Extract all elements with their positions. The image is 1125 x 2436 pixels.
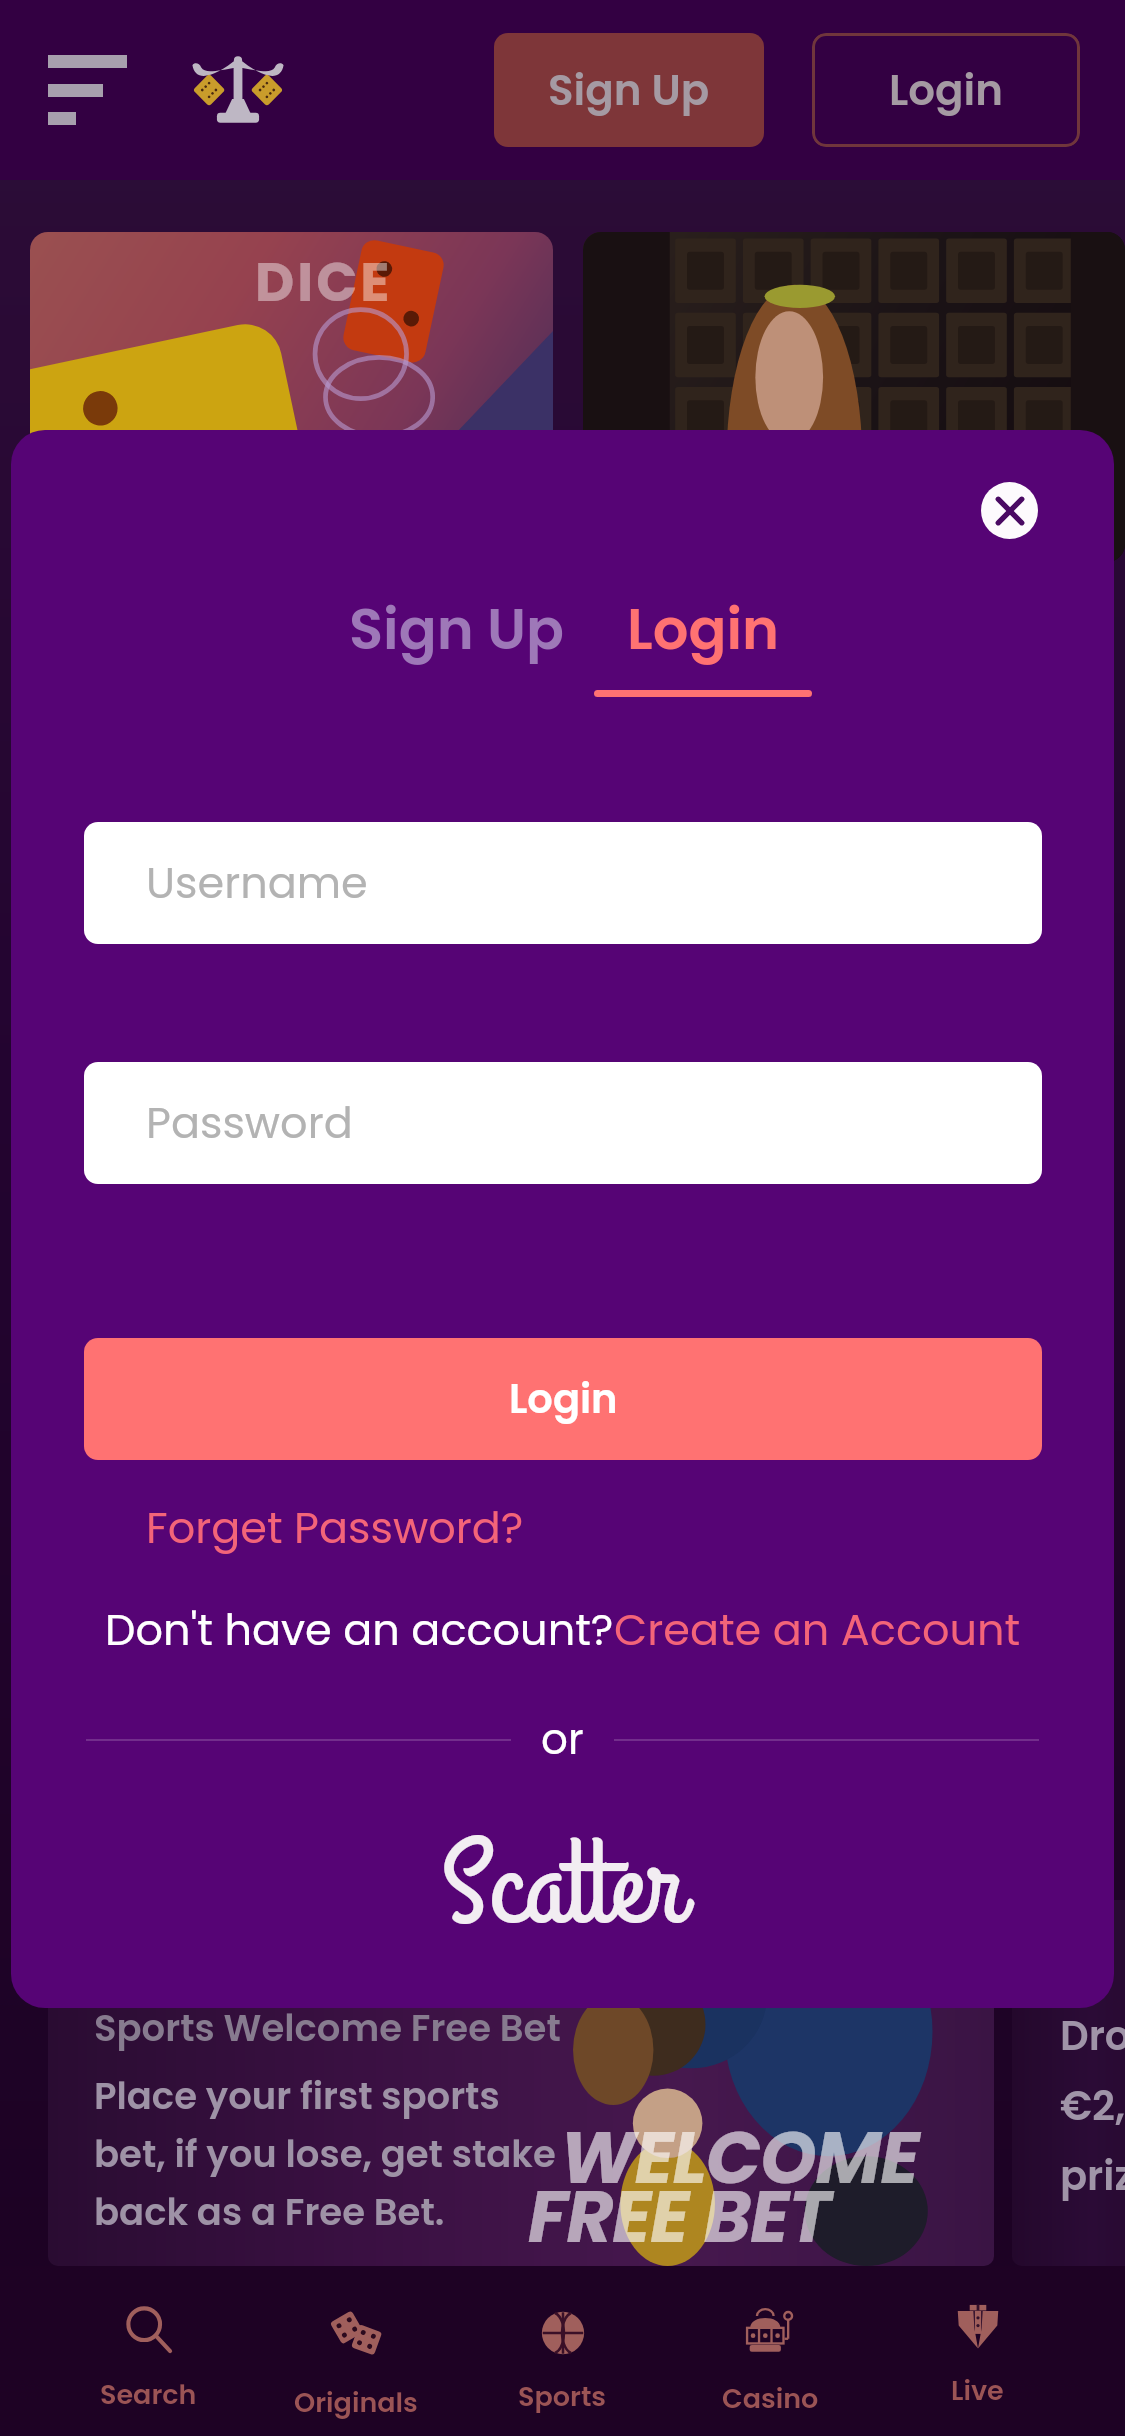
staticText: Login — [889, 61, 1003, 120]
button[interactable]: Close — [981, 482, 1038, 539]
staticText: Drop — [1060, 2008, 1125, 2064]
button[interactable]: Create an Account — [614, 1600, 1021, 1660]
button[interactable]: Username — [84, 822, 1042, 944]
staticText: prize — [1060, 2148, 1125, 2204]
button[interactable]: WELCOME — [48, 1900, 994, 2266]
staticText: Forget Password? — [146, 1498, 524, 1558]
staticText: Login — [627, 590, 779, 668]
staticText: Sports Welcome Free Bet — [94, 2002, 561, 2054]
button[interactable]: Home — [188, 40, 288, 140]
button[interactable]: Sports — [452, 2296, 672, 2424]
staticText: Username — [146, 853, 368, 913]
staticText: Login — [509, 1371, 618, 1427]
staticText: Live — [951, 2372, 1004, 2410]
button[interactable]: Drop — [1012, 1900, 1125, 2266]
staticText: or — [541, 1710, 584, 1769]
staticText: WELCOME — [560, 2107, 919, 2208]
staticText: Search — [100, 2376, 197, 2414]
button[interactable]: Login — [594, 580, 812, 697]
button[interactable]: Originals — [246, 2294, 466, 2422]
button[interactable]: Forget Password? — [134, 1488, 536, 1568]
staticText: Place your first sports bet, if you lose… — [94, 2070, 556, 2237]
staticText: Sign Up — [548, 61, 710, 120]
button[interactable]: Login — [84, 1338, 1042, 1460]
staticText: FREE BET — [528, 2166, 830, 2266]
staticText: Scatter — [441, 1806, 684, 1969]
button[interactable]: Sign Up — [329, 580, 584, 678]
staticText: Don't have an account? — [105, 1600, 614, 1660]
button[interactable]: Menu — [40, 40, 136, 140]
staticText: Sports — [518, 2378, 607, 2416]
staticText: Sign Up — [349, 590, 564, 668]
button[interactable]: Login — [812, 33, 1080, 147]
button[interactable] — [583, 232, 1125, 562]
staticText: Password — [146, 1093, 353, 1153]
staticText: €2,0 — [1060, 2078, 1125, 2134]
button[interactable]: Sign Up — [494, 33, 764, 147]
staticText: Create an Account — [614, 1600, 1021, 1660]
button[interactable]: Search — [38, 2292, 258, 2420]
staticText: Originals — [294, 2384, 418, 2422]
staticText: Casino — [722, 2380, 819, 2418]
button[interactable]: Password — [84, 1062, 1042, 1184]
staticText: DICE — [255, 244, 393, 320]
button[interactable]: Live — [867, 2290, 1087, 2418]
button[interactable]: Casino — [660, 2292, 880, 2420]
button[interactable]: DICE — [30, 232, 553, 562]
